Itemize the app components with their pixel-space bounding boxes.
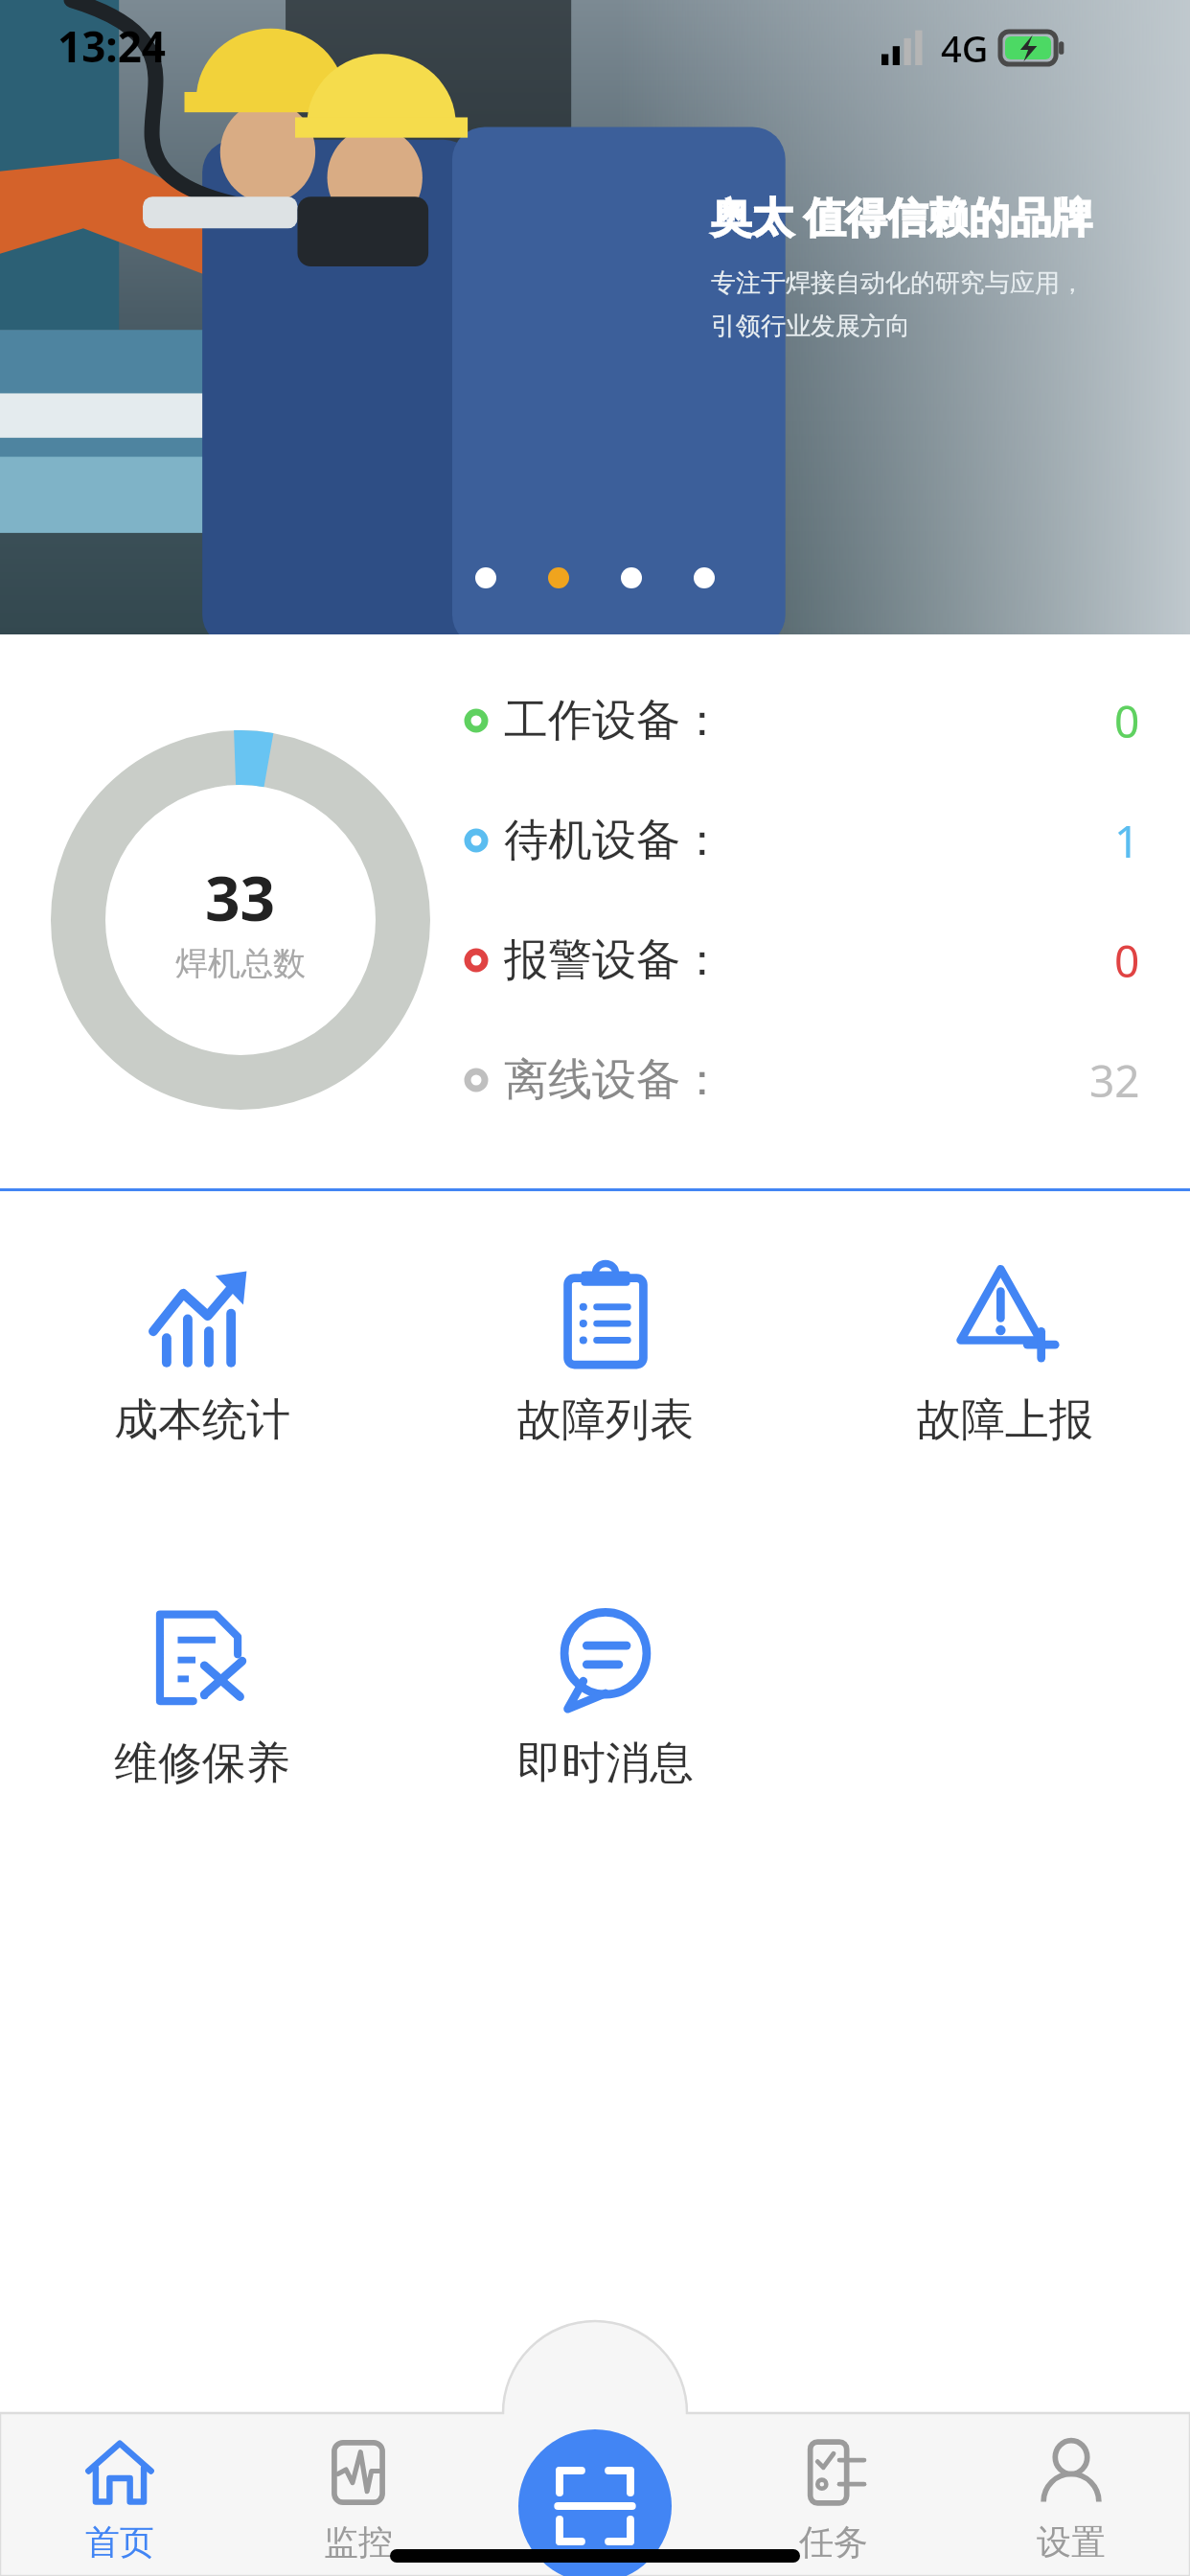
staticText: 1 bbox=[1114, 811, 1140, 871]
staticText: 任务 bbox=[799, 2520, 868, 2564]
button[interactable]: Scan bbox=[518, 2429, 672, 2576]
staticText: 专注于焊接自动化的研究与应用， bbox=[711, 267, 1085, 299]
staticText: 待机设备： bbox=[504, 813, 724, 868]
staticText: 引领行业发展方向 bbox=[711, 310, 910, 342]
button[interactable]: 离线设备： bbox=[464, 1044, 1140, 1116]
button[interactable]: 即时消息 bbox=[500, 1603, 711, 1791]
staticText: 成本统计 bbox=[114, 1392, 290, 1448]
button[interactable]: 报警设备： bbox=[464, 924, 1140, 997]
staticText: 4G bbox=[941, 23, 989, 73]
button[interactable]: 任务 bbox=[715, 2413, 952, 2564]
staticText: 维修保养 bbox=[114, 1736, 290, 1791]
button[interactable]: 故障列表 bbox=[500, 1260, 711, 1448]
button[interactable]: Page 2 bbox=[548, 567, 569, 588]
button[interactable]: Page 4 bbox=[694, 567, 715, 588]
staticText: 设置 bbox=[1037, 2520, 1106, 2564]
button[interactable]: 待机设备： bbox=[464, 804, 1140, 877]
button[interactable]: Page 1 bbox=[475, 567, 496, 588]
button[interactable]: 维修保养 bbox=[97, 1603, 308, 1791]
staticText: 0 bbox=[1114, 691, 1140, 751]
button[interactable]: 工作设备： bbox=[464, 684, 1140, 757]
staticText: 工作设备： bbox=[504, 693, 724, 748]
staticText: 32 bbox=[1089, 1050, 1140, 1111]
button[interactable]: Page 3 bbox=[621, 567, 642, 588]
staticText: 离线设备： bbox=[504, 1052, 724, 1108]
staticText: 监控 bbox=[324, 2520, 393, 2564]
staticText: 33 bbox=[205, 856, 276, 939]
button[interactable]: 设置 bbox=[952, 2413, 1190, 2564]
button[interactable]: 成本统计 bbox=[97, 1260, 308, 1448]
staticText: 13:24 bbox=[57, 17, 167, 75]
staticText: 奥太 值得信赖的品牌 bbox=[711, 188, 1093, 244]
staticText: 故障上报 bbox=[917, 1392, 1093, 1448]
staticText: 焊机总数 bbox=[175, 943, 306, 984]
staticText: 0 bbox=[1114, 931, 1140, 991]
staticText: 报警设备： bbox=[504, 932, 724, 988]
staticText: 故障列表 bbox=[517, 1392, 694, 1448]
button[interactable]: 故障上报 bbox=[900, 1260, 1110, 1448]
button[interactable]: 首页 bbox=[0, 2413, 239, 2564]
staticText: 首页 bbox=[85, 2520, 154, 2564]
button[interactable]: 监控 bbox=[239, 2413, 477, 2564]
staticText: 即时消息 bbox=[517, 1736, 694, 1791]
